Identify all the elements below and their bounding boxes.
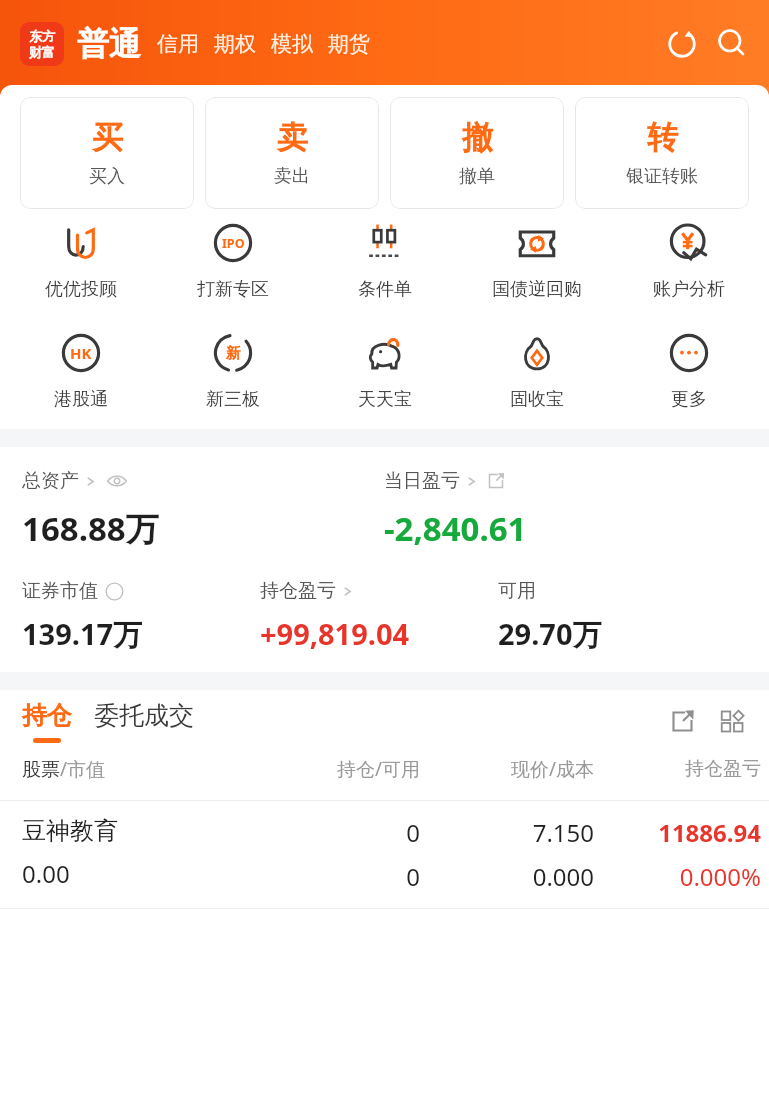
- staticText: HK: [70, 343, 92, 363]
- staticText: 买: [92, 118, 123, 157]
- button[interactable]: 账户分析: [613, 219, 765, 303]
- staticText: 可用: [498, 579, 536, 603]
- staticText: 持仓盈亏: [594, 757, 761, 781]
- button[interactable]: 天天宝: [309, 329, 461, 413]
- staticText: 财富: [29, 44, 55, 60]
- staticText: 模拟: [271, 31, 313, 57]
- button[interactable]: 撤: [390, 97, 564, 209]
- staticText: 优优投顾: [45, 278, 117, 301]
- button[interactable]: 总资产: [22, 469, 128, 493]
- staticText: IPO: [222, 235, 245, 252]
- staticText: 打新专区: [197, 278, 269, 301]
- staticText: 信用: [157, 31, 199, 57]
- button[interactable]: 新: [157, 329, 309, 413]
- staticText: 0.000%: [679, 860, 761, 893]
- button[interactable]: 当日盈亏: [384, 469, 505, 493]
- staticText: 股票/市值: [22, 756, 246, 782]
- staticText: 更多: [671, 388, 707, 411]
- button[interactable]: 证券市值: [22, 579, 124, 603]
- staticText: 0: [406, 816, 420, 849]
- button[interactable]: 更多: [613, 329, 765, 413]
- staticText: 买入: [89, 165, 125, 188]
- button[interactable]: 期货: [328, 31, 370, 57]
- button[interactable]: Open in new window: [665, 704, 699, 738]
- staticText: +99,819.04: [260, 614, 410, 653]
- staticText: 0.00: [22, 857, 70, 890]
- staticText: 撤单: [459, 165, 495, 188]
- staticText: 139.17万: [22, 614, 143, 654]
- button[interactable]: Refresh: [661, 23, 703, 65]
- staticText: 固收宝: [510, 388, 564, 411]
- staticText: 银证转账: [626, 165, 698, 188]
- staticText: 持仓: [22, 700, 72, 731]
- button[interactable]: 委托成交: [94, 700, 194, 743]
- button[interactable]: 普通: [77, 24, 141, 64]
- staticText: 当日盈亏: [384, 469, 460, 493]
- staticText: 转: [647, 118, 678, 157]
- button[interactable]: 国债逆回购: [461, 219, 613, 303]
- staticText: 11886.94: [658, 816, 761, 849]
- button[interactable]: 持仓盈亏: [260, 579, 354, 603]
- button[interactable]: 条件单: [309, 219, 461, 303]
- staticText: 7.150: [532, 816, 594, 849]
- staticText: 卖出: [274, 165, 310, 188]
- staticText: 168.88万: [22, 506, 159, 551]
- staticText: 证券市值: [22, 579, 98, 603]
- button[interactable]: Search: [711, 23, 753, 65]
- button[interactable]: 豆神教育: [0, 801, 769, 908]
- button[interactable]: Grid view: [715, 704, 749, 738]
- staticText: 撤: [462, 118, 493, 157]
- staticText: 0: [406, 860, 420, 893]
- staticText: 普通: [77, 24, 141, 64]
- staticText: 卖: [277, 118, 308, 157]
- staticText: 天天宝: [358, 388, 412, 411]
- button[interactable]: 东方财富: [20, 22, 64, 66]
- staticText: 账户分析: [653, 278, 725, 301]
- staticText: 持仓/可用: [246, 756, 420, 782]
- button[interactable]: HK: [4, 329, 157, 413]
- staticText: 新三板: [206, 388, 260, 411]
- button[interactable]: 信用: [157, 31, 199, 57]
- staticText: 期货: [328, 31, 370, 57]
- staticText: 期权: [214, 31, 256, 57]
- button[interactable]: IPO: [157, 219, 309, 303]
- staticText: 0.000: [532, 860, 594, 893]
- staticText: 持仓盈亏: [260, 579, 336, 603]
- staticText: 委托成交: [94, 700, 194, 731]
- staticText: 港股通: [54, 388, 108, 411]
- staticText: 新: [226, 344, 241, 363]
- staticText: 豆神教育: [22, 816, 118, 846]
- staticText: 现价/成本: [420, 756, 594, 782]
- staticText: 条件单: [358, 278, 412, 301]
- button[interactable]: 转: [575, 97, 749, 209]
- staticText: 总资产: [22, 469, 79, 493]
- button[interactable]: 固收宝: [461, 329, 613, 413]
- button[interactable]: 模拟: [271, 31, 313, 57]
- staticText: 东方: [29, 28, 55, 44]
- button[interactable]: 期权: [214, 31, 256, 57]
- staticText: -2,840.61: [384, 506, 527, 551]
- button[interactable]: 持仓: [22, 700, 72, 743]
- button[interactable]: 买: [20, 97, 194, 209]
- staticText: 国债逆回购: [492, 278, 582, 301]
- button[interactable]: 卖: [205, 97, 379, 209]
- button[interactable]: 优优投顾: [4, 219, 157, 303]
- staticText: 29.70万: [498, 614, 602, 654]
